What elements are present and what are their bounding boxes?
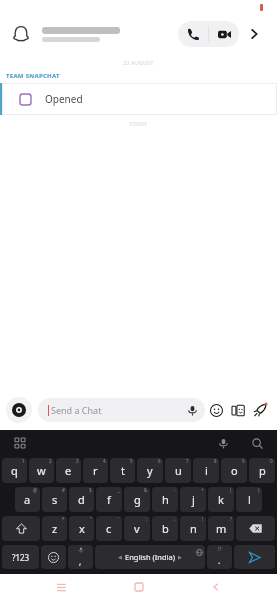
button[interactable]: x (69, 516, 94, 541)
button[interactable]: w (29, 458, 54, 483)
button[interactable]: Comma (68, 545, 93, 569)
button[interactable]: z (42, 516, 67, 541)
button[interactable]: j (180, 487, 206, 512)
button[interactable]: h (152, 487, 178, 512)
staticText: m (216, 521, 227, 536)
staticText: ' (118, 516, 120, 522)
staticText: ) (258, 487, 260, 493)
button[interactable]: o (221, 458, 247, 483)
button[interactable]: Shift (2, 516, 40, 541)
staticText: 6 (158, 458, 161, 464)
staticText: 3 (76, 458, 79, 464)
staticText: v (134, 521, 140, 536)
button[interactable]: Back (199, 574, 233, 600)
button[interactable]: Send a Chat (38, 398, 205, 422)
staticText: b (162, 521, 169, 536)
button[interactable]: t (110, 458, 135, 483)
staticText: p (259, 463, 266, 478)
staticText: @ (33, 487, 38, 493)
staticText: 9 (242, 458, 245, 464)
staticText: 2 (49, 458, 52, 464)
staticText: _ (118, 487, 120, 493)
button[interactable]: Voice message (181, 399, 203, 421)
staticText: Opened (45, 92, 83, 106)
staticText: h (162, 492, 169, 507)
staticText: TODAY (0, 121, 277, 128)
button[interactable]: n (180, 516, 206, 541)
button[interactable]: p (249, 458, 275, 483)
button[interactable]: Send (234, 545, 275, 569)
staticText: $ (89, 487, 92, 493)
button[interactable]: e (56, 458, 81, 483)
staticText: ▶ (178, 554, 182, 560)
staticText: y (147, 463, 153, 478)
staticText: 7 (186, 458, 189, 464)
staticText: ?123 (12, 552, 30, 563)
button[interactable]: g (124, 487, 150, 512)
button[interactable]: v (124, 516, 150, 541)
staticText: a (24, 492, 31, 507)
button[interactable]: Backspace (236, 516, 275, 541)
button[interactable]: Period (207, 545, 232, 569)
button[interactable]: ◀ (95, 545, 205, 569)
button[interactable]: Stickers (227, 399, 249, 421)
button[interactable]: a (15, 487, 40, 512)
button[interactable]: Emoji (205, 399, 227, 421)
staticText: # (62, 487, 65, 493)
staticText: 5 (130, 458, 133, 464)
button[interactable]: Opened (0, 83, 277, 115)
button[interactable]: Profile (8, 21, 34, 47)
button[interactable]: k (208, 487, 234, 512)
button[interactable]: r (83, 458, 108, 483)
staticText: 0 (270, 458, 273, 464)
button[interactable]: More (239, 19, 269, 49)
staticText: t (121, 463, 125, 478)
staticText: l (248, 492, 251, 507)
staticText: ? (230, 516, 232, 522)
button[interactable]: Call (178, 21, 208, 47)
staticText: e (65, 463, 72, 478)
button[interactable]: Camera (6, 397, 32, 423)
staticText: . (218, 554, 221, 566)
staticText: - (174, 487, 176, 493)
staticText: ; (174, 516, 176, 522)
staticText: 1 (22, 458, 25, 464)
staticText: q (11, 463, 18, 478)
button[interactable]: Recent apps (44, 574, 78, 600)
staticText: z (52, 521, 58, 536)
staticText: English (India) (125, 552, 175, 562)
staticText: x (79, 521, 85, 536)
staticText: i (205, 463, 208, 478)
button[interactable]: b (152, 516, 178, 541)
staticText: Send a Chat (51, 404, 181, 416)
staticText: * (62, 516, 65, 522)
button[interactable]: Keyboard options (10, 433, 30, 453)
button[interactable]: l (236, 487, 262, 512)
button[interactable]: s (42, 487, 67, 512)
staticText: ( (230, 487, 232, 493)
staticText: + (201, 487, 204, 493)
button[interactable]: m (208, 516, 234, 541)
button[interactable]: Emoji keyboard (41, 545, 66, 569)
button[interactable]: c (96, 516, 122, 541)
button[interactable]: Home (122, 574, 156, 600)
button[interactable]: Video call (209, 21, 239, 47)
button[interactable]: y (137, 458, 163, 483)
staticText: 4 (103, 458, 106, 464)
button[interactable]: d (69, 487, 94, 512)
staticText: w (37, 463, 46, 478)
button[interactable]: q (2, 458, 27, 483)
button[interactable]: f (96, 487, 122, 512)
button[interactable]: Send snap (249, 399, 271, 421)
staticText: " (90, 516, 92, 522)
staticText: & (144, 487, 148, 493)
staticText: , (79, 556, 82, 567)
button[interactable] (40, 27, 178, 42)
button[interactable]: u (165, 458, 191, 483)
staticText: u (175, 463, 182, 478)
button[interactable]: Numbers and symbols (2, 545, 39, 569)
button[interactable]: Search (247, 433, 267, 453)
button[interactable]: Voice input (213, 433, 233, 453)
button[interactable]: i (193, 458, 219, 483)
staticText: g (134, 492, 141, 507)
